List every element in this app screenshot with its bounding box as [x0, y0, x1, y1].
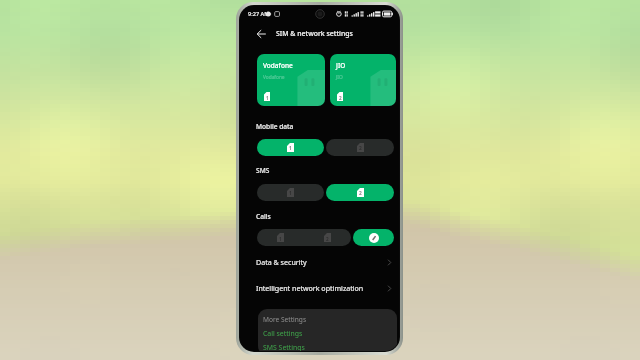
staticText: SMS Settings — [263, 343, 305, 351]
button[interactable]: JIO — [330, 54, 396, 106]
staticText: JIO — [336, 61, 346, 70]
staticText: SMS — [256, 166, 270, 175]
staticText: Calls — [256, 212, 271, 221]
staticText: Vodafone — [263, 74, 285, 81]
button[interactable]: Data & security — [240, 251, 399, 273]
staticText: 9:27 AM — [248, 10, 270, 18]
staticText: Call settings — [263, 329, 303, 338]
staticText: 2 — [359, 145, 362, 152]
staticText: 2 — [359, 190, 362, 197]
button[interactable]: SIM 2 — [326, 184, 394, 201]
staticText: 1 — [279, 236, 282, 242]
staticText: SIM & network settings — [276, 29, 353, 38]
button[interactable]: Ask every time — [353, 229, 394, 246]
staticText: JIO — [336, 74, 343, 81]
button[interactable]: Vodafone — [257, 54, 325, 106]
button[interactable]: SIM 1 — [257, 184, 324, 201]
staticText: More Settings — [263, 315, 307, 324]
button[interactable]: SIM 2 — [326, 139, 394, 156]
staticText: 1 — [266, 95, 269, 101]
staticText: Mobile data — [256, 122, 294, 131]
button[interactable]: Back — [256, 28, 268, 40]
button[interactable]: Intelligent network optimization — [240, 277, 399, 299]
staticText: 1 — [289, 190, 292, 197]
button[interactable]: SMS Settings — [263, 343, 305, 351]
staticText: Vodafone — [263, 61, 293, 70]
button[interactable]: SIM 2 for calls — [304, 229, 351, 246]
staticText: Data & security — [256, 257, 307, 267]
staticText: 2 — [339, 95, 342, 101]
button[interactable]: Call settings — [263, 329, 303, 338]
button[interactable]: SIM 1 — [257, 139, 324, 156]
button[interactable]: SIM 1 for calls — [257, 229, 304, 246]
staticText: 1 — [289, 145, 292, 152]
staticText: Intelligent network optimization — [256, 283, 364, 293]
staticText: 2 — [326, 236, 329, 242]
